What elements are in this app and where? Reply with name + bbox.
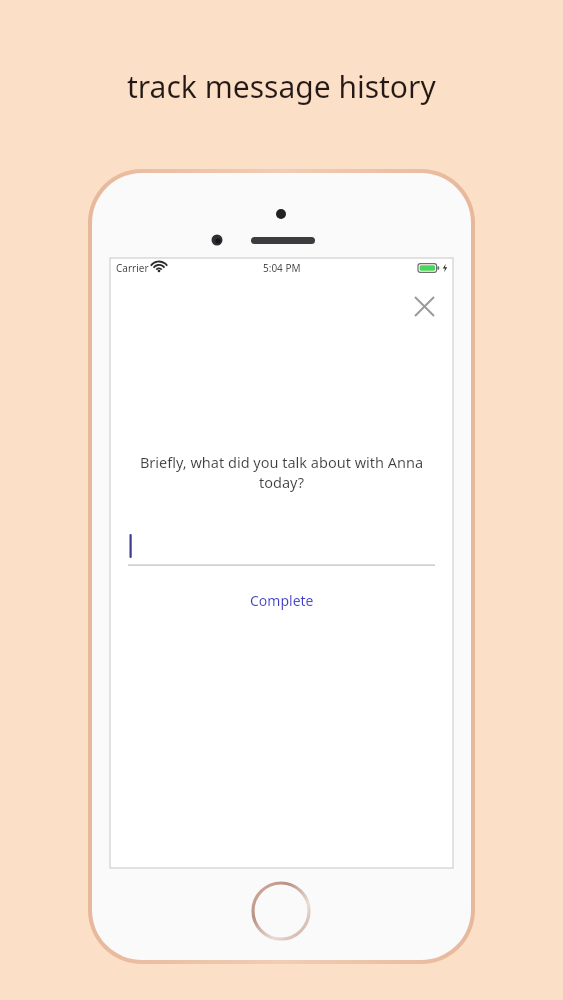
button[interactable]: Close: [409, 291, 439, 321]
staticText: track message history: [127, 66, 436, 107]
staticText: Briefly, what did you talk about with An…: [128, 452, 435, 493]
staticText: Carrier: [116, 261, 149, 275]
staticText: Complete: [250, 591, 314, 610]
staticText: 5:04 PM: [263, 261, 301, 275]
button[interactable]: Complete: [238, 587, 326, 614]
button[interactable]: [128, 532, 435, 566]
